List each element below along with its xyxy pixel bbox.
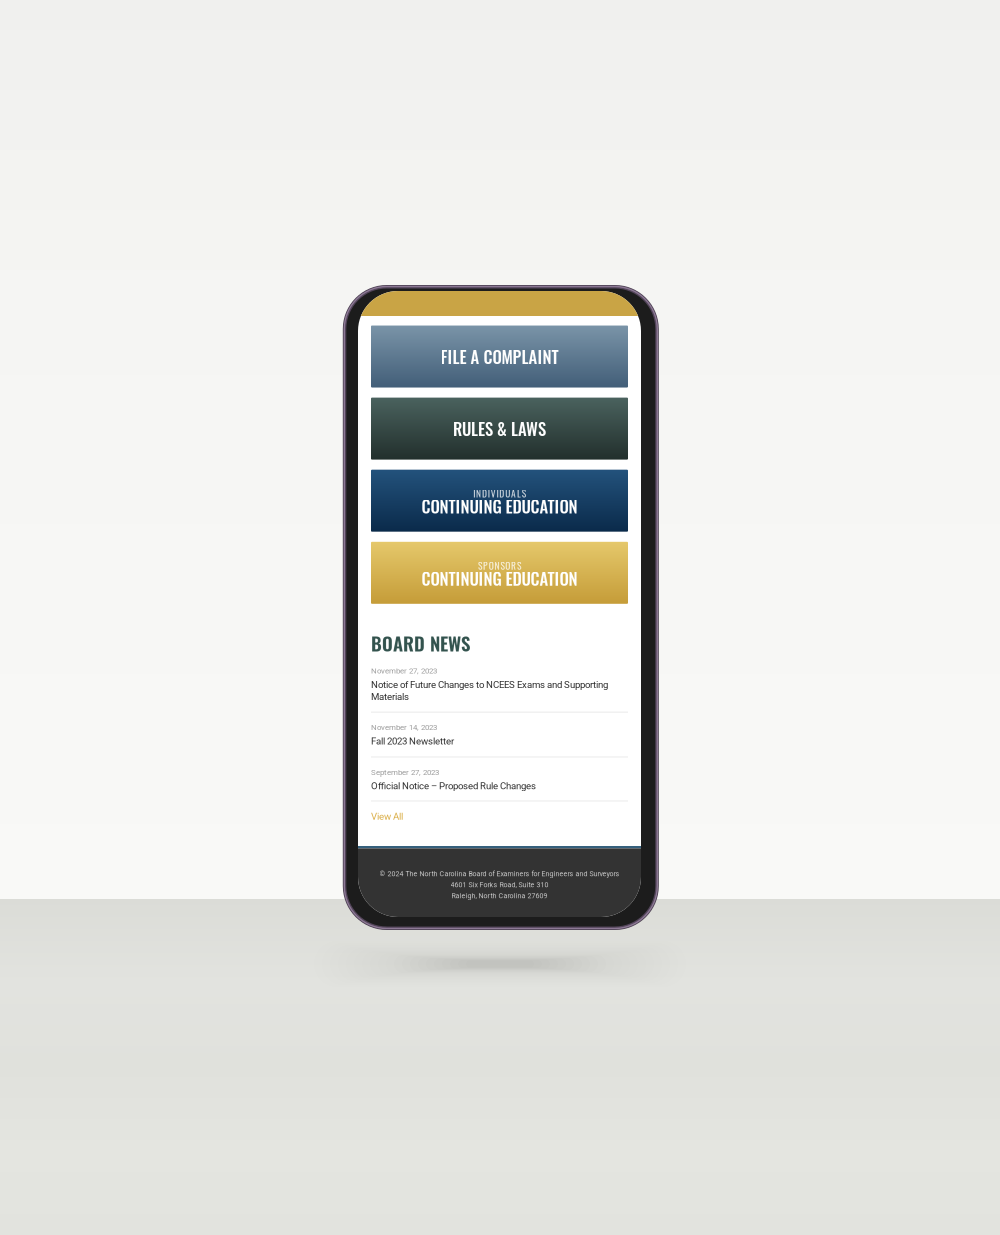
staticText: Fall 2023 Newsletter bbox=[371, 735, 454, 747]
staticText: CONTINUING EDUCATION bbox=[421, 566, 577, 590]
staticText: Notice of Future Changes to NCEES Exams … bbox=[371, 679, 608, 702]
staticText: September 27, 2023 bbox=[371, 768, 439, 777]
staticText: November 14, 2023 bbox=[371, 723, 437, 732]
staticText: 4601 Six Forks Road, Suite 310 bbox=[450, 881, 548, 889]
button[interactable]: November 27, 2023 bbox=[371, 656, 628, 712]
button[interactable]: November 14, 2023 bbox=[371, 713, 628, 756]
staticText: November 27, 2023 bbox=[371, 666, 437, 675]
button[interactable]: INDIVIDUALS bbox=[371, 470, 628, 532]
button[interactable]: SPONSORS bbox=[371, 542, 628, 604]
staticText: BOARD NEWS bbox=[371, 629, 470, 657]
button[interactable]: FILE A COMPLAINT bbox=[371, 325, 628, 387]
staticText: Raleigh, North Carolina 27609 bbox=[451, 892, 547, 900]
staticText: FILE A COMPLAINT bbox=[440, 344, 558, 369]
staticText: RULES & LAWS bbox=[453, 416, 546, 441]
staticText: SPONSORS bbox=[478, 558, 521, 572]
staticText: Official Notice – Proposed Rule Changes bbox=[371, 780, 536, 792]
staticText: INDIVIDUALS bbox=[473, 486, 526, 500]
button[interactable]: View All bbox=[371, 801, 628, 836]
staticText: CONTINUING EDUCATION bbox=[421, 494, 577, 518]
staticText: © 2024 The North Carolina Board of Exami… bbox=[379, 870, 619, 878]
staticText: View All bbox=[371, 811, 403, 822]
button[interactable]: September 27, 2023 bbox=[371, 757, 628, 800]
button[interactable]: RULES & LAWS bbox=[371, 398, 628, 460]
